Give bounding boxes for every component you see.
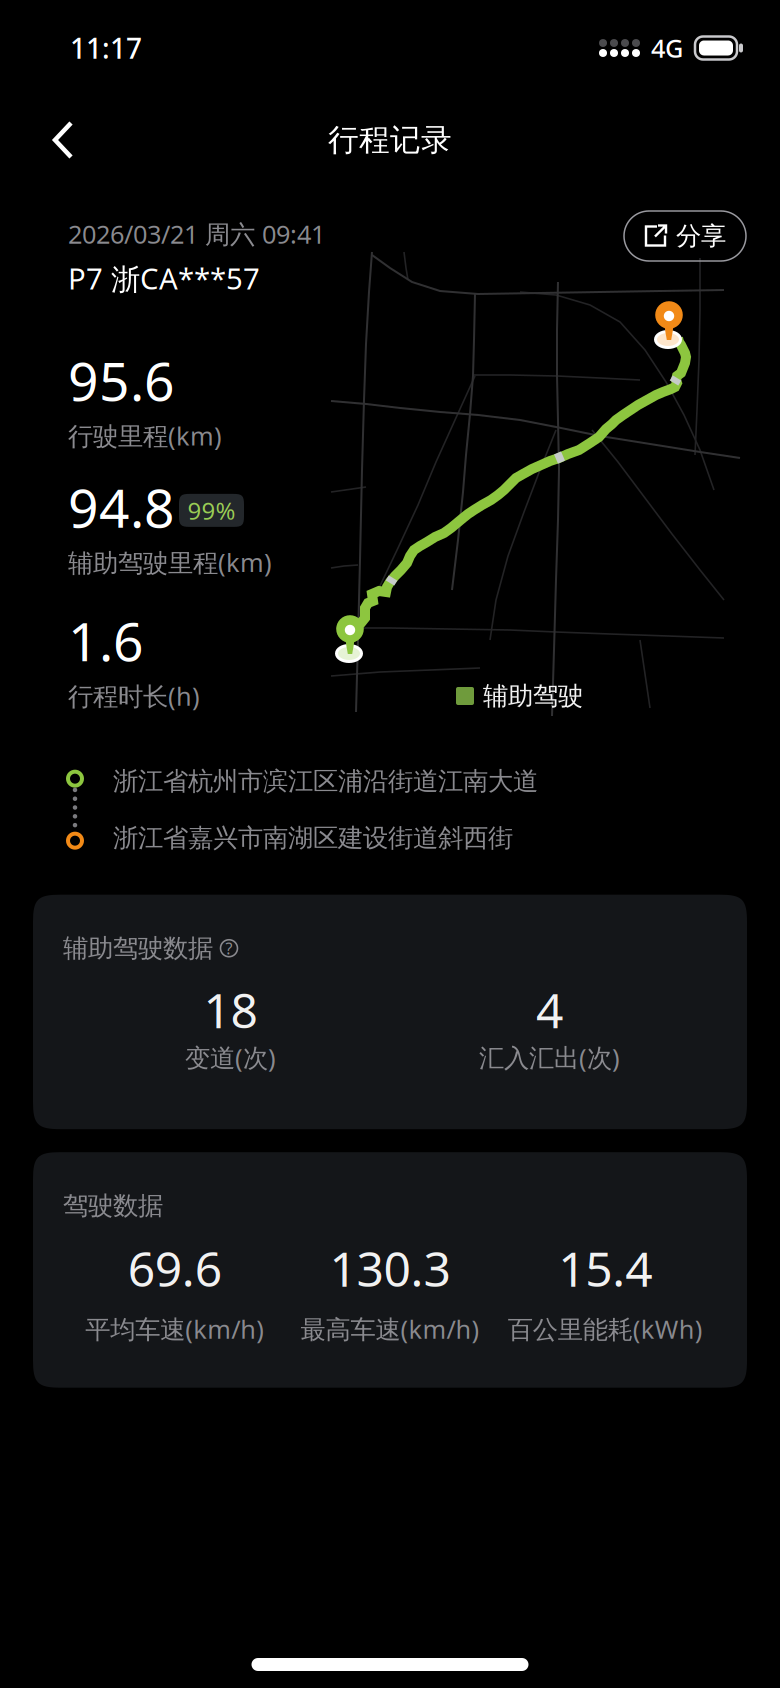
staticText: 驾驶数据 (63, 1190, 163, 1221)
staticText: 辅助驾驶 (483, 680, 583, 711)
staticText: 69.6 (128, 1236, 222, 1300)
staticText: 汇入汇出(次) (479, 1040, 620, 1074)
staticText: 15.4 (558, 1236, 652, 1300)
staticText: 130.3 (329, 1236, 450, 1300)
staticText: P7 浙CA***57 (68, 259, 260, 298)
staticText: 18 (203, 978, 257, 1041)
staticText: 95.6 (68, 345, 175, 416)
staticText: 最高车速(km/h) (300, 1312, 479, 1346)
staticText: 4 (536, 978, 563, 1041)
staticText: 1.6 (68, 605, 144, 676)
staticText: 浙江省嘉兴市南湖区建设街道斜西街 (113, 823, 513, 854)
staticText: 辅助驾驶里程(km) (68, 545, 272, 579)
staticText: 行程记录 (328, 121, 452, 159)
staticText: 平均车速(km/h) (85, 1312, 264, 1346)
staticText: 94.8 (68, 472, 175, 542)
staticText: 分享 (676, 220, 726, 251)
staticText: 行程时长(h) (68, 679, 200, 713)
staticText: 11:17 (70, 29, 142, 67)
button[interactable]: Back (31, 108, 95, 172)
staticText: 99% (187, 494, 235, 526)
staticText: 2026/03/21 周六 09:41 (68, 217, 325, 251)
staticText: 浙江省杭州市滨江区浦沿街道江南大道 (113, 766, 538, 797)
staticText: 行驶里程(km) (68, 419, 222, 452)
staticText: 辅助驾驶数据 (63, 933, 213, 964)
button[interactable]: 分享 (624, 211, 746, 261)
staticText: ? (225, 938, 232, 959)
staticText: 4G (651, 31, 683, 65)
staticText: 变道(次) (185, 1040, 276, 1074)
staticText: 百公里能耗(kWh) (508, 1312, 703, 1346)
